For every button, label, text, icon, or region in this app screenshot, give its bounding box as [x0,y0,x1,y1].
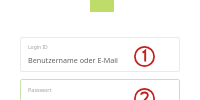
staticText: Benutzername oder E-Mail [28,55,118,65]
staticText: Passwort [28,86,52,93]
button[interactable]: Passwort [20,79,180,100]
button[interactable]: Login ID [20,37,180,72]
other: Step 2 [134,88,155,100]
staticText: Login ID [28,44,48,51]
other: Step 1 [134,46,155,67]
